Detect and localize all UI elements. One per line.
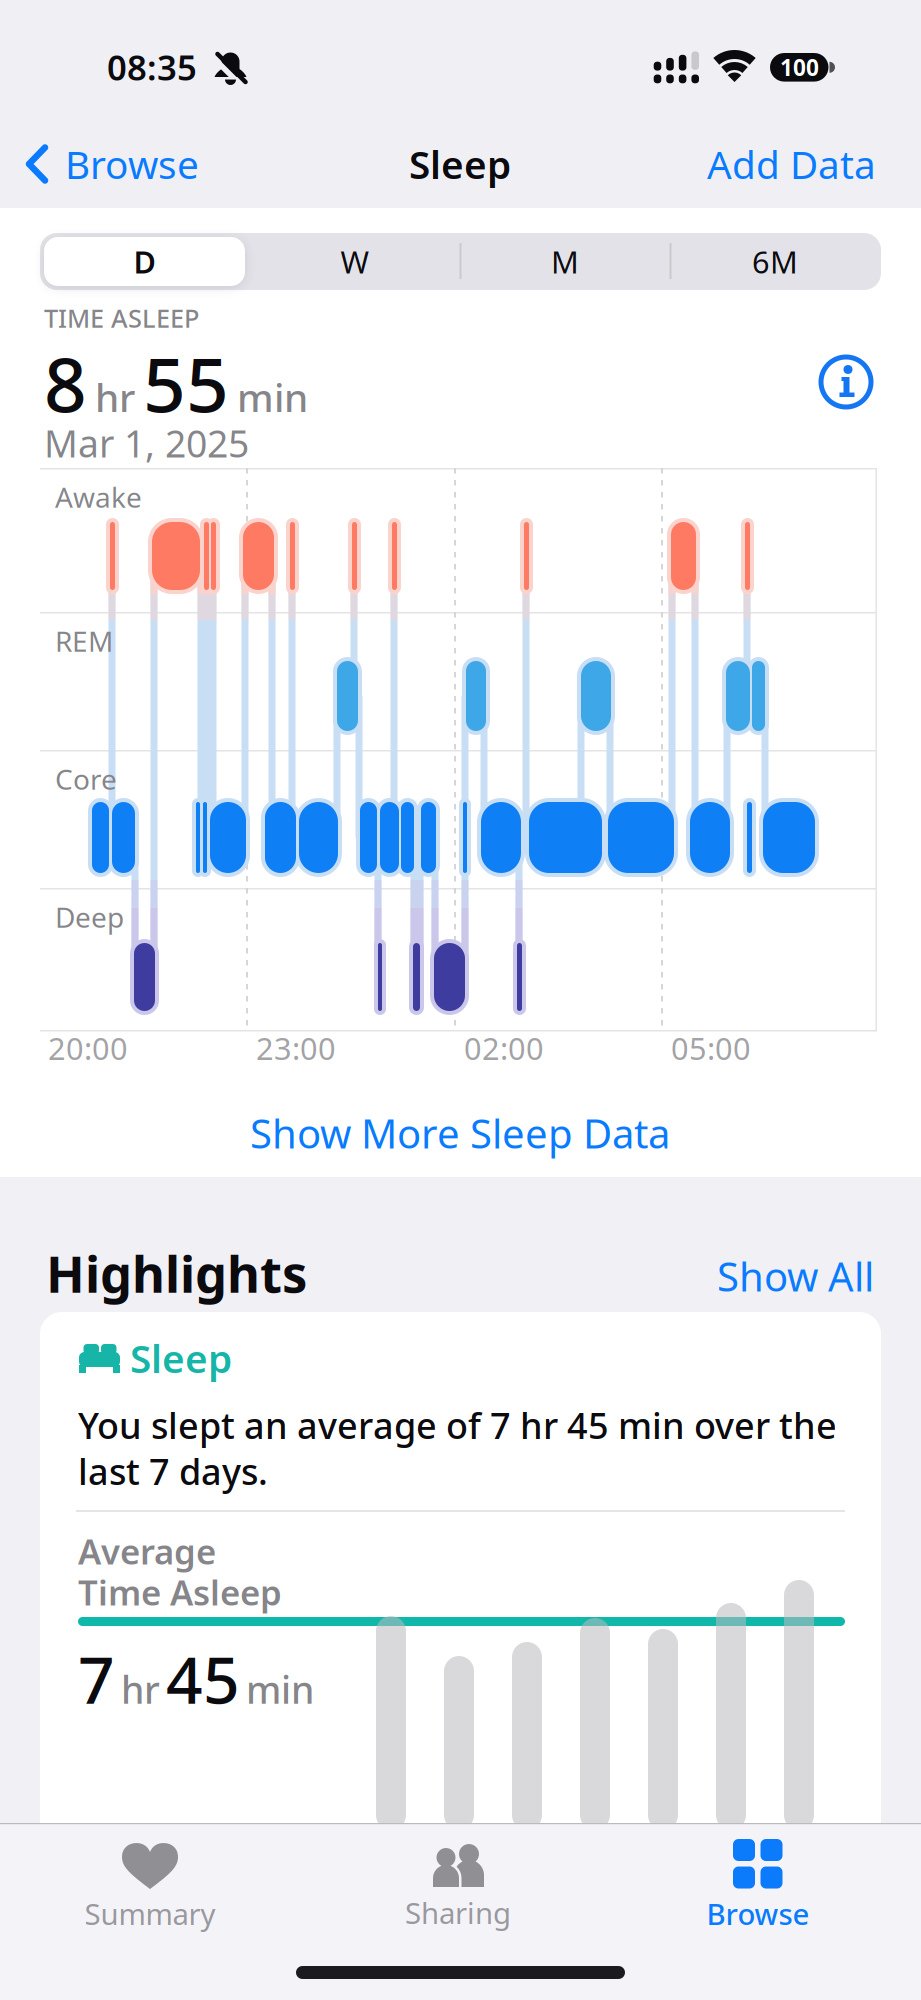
button[interactable]: M: [465, 237, 665, 286]
staticText: Mar 1, 2025: [44, 418, 249, 468]
button[interactable]: Show More Sleep Data: [250, 1106, 670, 1159]
staticText: 05:00: [671, 1028, 751, 1068]
button[interactable]: Summary: [84, 1843, 215, 1933]
staticText: 7: [78, 1636, 115, 1721]
staticText: You slept an average of 7 hr 45 min over…: [78, 1401, 837, 1449]
staticText: Awake: [55, 478, 142, 516]
staticText: Browse: [706, 1894, 809, 1933]
button[interactable]: Back: [26, 138, 199, 190]
button[interactable]: Add Data: [707, 138, 876, 190]
staticText: 6M: [752, 241, 798, 282]
button[interactable]: More Information: [818, 354, 874, 410]
staticText: hr: [95, 371, 135, 423]
staticText: 23:00: [256, 1028, 336, 1068]
staticText: 02:00: [464, 1028, 544, 1068]
staticText: M: [551, 241, 579, 282]
staticText: 20:00: [48, 1028, 128, 1068]
staticText: last 7 days.: [78, 1447, 268, 1495]
button[interactable]: 6M: [675, 237, 875, 286]
staticText: W: [340, 241, 369, 282]
staticText: 08:35: [107, 44, 197, 90]
staticText: Deep: [55, 898, 124, 936]
button[interactable]: D: [44, 237, 245, 286]
staticText: hr: [121, 1665, 160, 1714]
button[interactable]: W: [255, 237, 455, 286]
staticText: Add Data: [707, 138, 876, 190]
staticText: 8: [44, 333, 87, 433]
staticText: Summary: [84, 1894, 215, 1933]
staticText: Sharing: [405, 1893, 511, 1932]
button[interactable]: Sleep highlight: [40, 1312, 881, 1823]
staticText: Highlights: [46, 1239, 307, 1307]
staticText: Show More Sleep Data: [250, 1106, 670, 1159]
staticText: min: [246, 1665, 314, 1714]
staticText: Show All: [717, 1249, 874, 1302]
button[interactable]: Sharing: [405, 1844, 511, 1932]
button[interactable]: Browse: [706, 1839, 809, 1933]
button[interactable]: Show All: [717, 1249, 874, 1302]
staticText: Browse: [65, 138, 199, 190]
staticText: 45: [166, 1636, 240, 1721]
staticText: Time Asleep: [78, 1569, 282, 1615]
staticText: TIME ASLEEP: [44, 301, 199, 335]
staticText: REM: [55, 622, 113, 660]
staticText: 100: [780, 52, 819, 82]
staticText: 55: [143, 333, 229, 433]
staticText: Average: [78, 1528, 216, 1574]
staticText: Core: [55, 760, 117, 798]
staticText: Sleep: [130, 1332, 232, 1384]
staticText: min: [237, 371, 308, 423]
staticText: D: [133, 241, 155, 282]
staticText: Sleep: [409, 138, 511, 190]
